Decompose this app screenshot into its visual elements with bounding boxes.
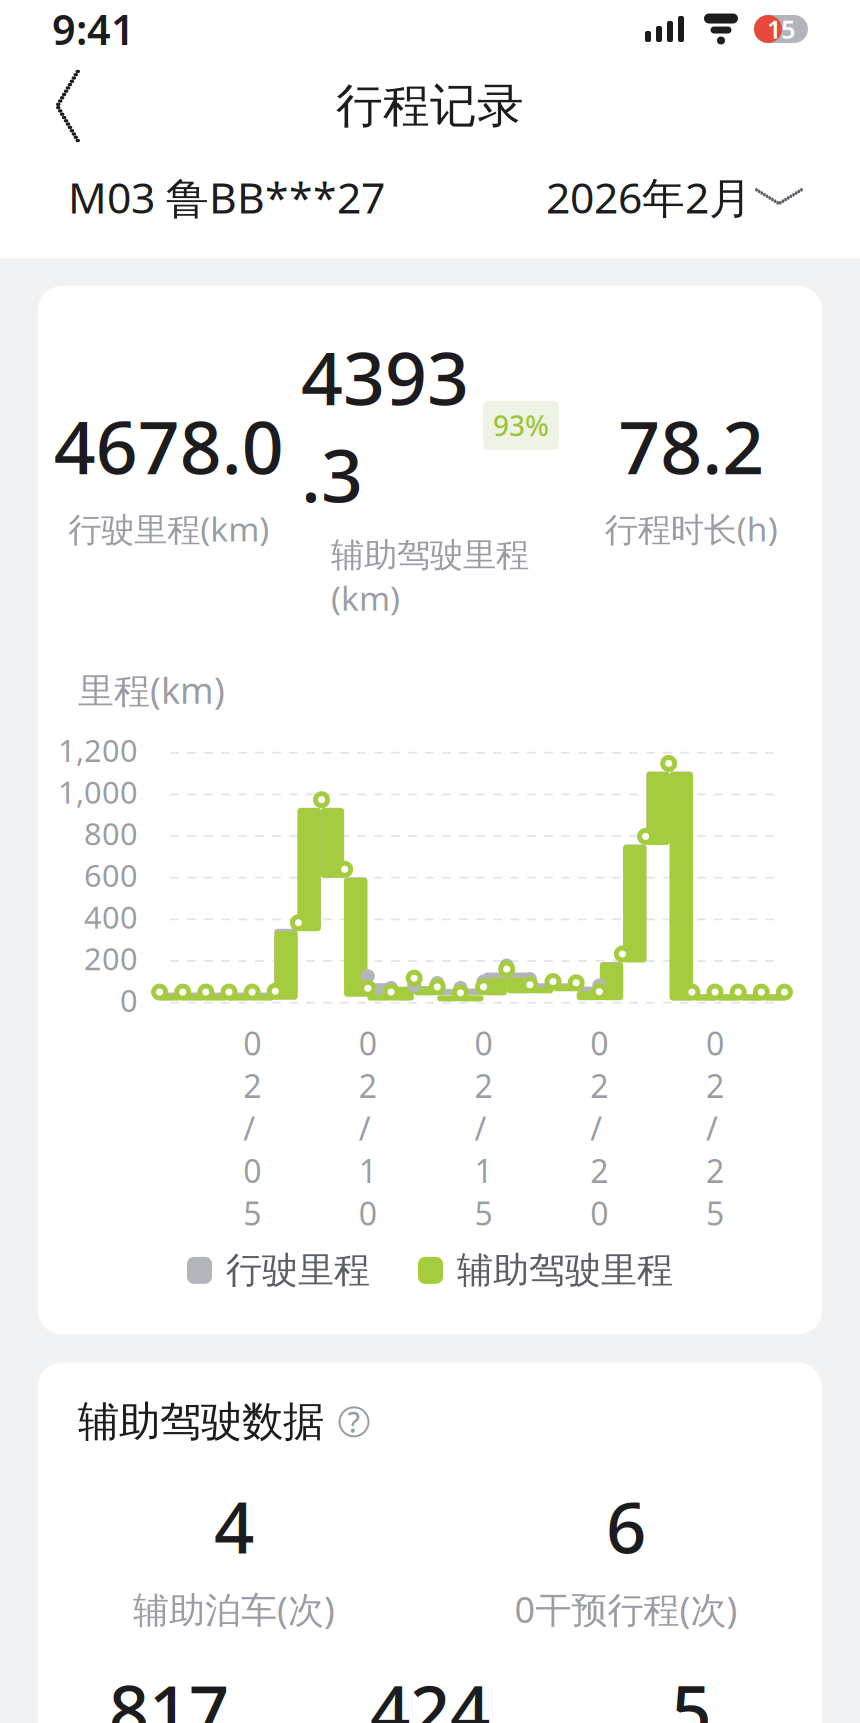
staticText: 1,000	[58, 771, 138, 812]
staticText: 800	[84, 813, 138, 854]
staticText: ?	[347, 1403, 360, 1440]
staticText: 4678.0	[54, 397, 284, 495]
staticText: 93%	[493, 407, 549, 444]
staticText: 4393.3	[301, 328, 469, 523]
staticText: 02/25	[706, 1022, 724, 1234]
staticText: 15	[767, 12, 795, 46]
staticText: 02/15	[475, 1022, 493, 1234]
staticText: 02/20	[590, 1022, 608, 1234]
button[interactable]: 2026年2月	[546, 157, 792, 237]
staticText: 行程记录	[336, 77, 524, 135]
button[interactable]: 辅助驾驶数据说明	[334, 1402, 374, 1442]
staticText: M03 鲁BB***27	[68, 169, 385, 225]
staticText: 0干预行程(次)	[514, 1585, 737, 1633]
staticText: 辅助泊车(次)	[133, 1585, 335, 1633]
staticText: 行驶里程(km)	[68, 506, 269, 551]
staticText: 02/10	[359, 1022, 377, 1234]
staticText: 0	[120, 980, 138, 1020]
staticText: 200	[84, 938, 138, 979]
staticText: 424	[370, 1663, 490, 1723]
staticText: 4	[214, 1479, 254, 1573]
staticText: 辅助驾驶里程	[457, 1248, 673, 1292]
staticText: 2026年2月	[546, 169, 752, 225]
staticText: 6	[606, 1479, 646, 1573]
staticText: 行驶里程	[226, 1248, 370, 1292]
staticText: 600	[84, 855, 138, 895]
staticText: 02/05	[243, 1022, 261, 1234]
button[interactable]: 返回	[30, 67, 106, 145]
staticText: 辅助驾驶里程(km)	[331, 535, 529, 620]
staticText: 里程(km)	[78, 666, 225, 714]
staticText: 400	[84, 896, 138, 937]
staticText: 1,200	[58, 730, 138, 770]
staticText: 辅助驾驶数据	[78, 1396, 324, 1447]
staticText: 78.2	[618, 397, 764, 495]
staticText: 5	[671, 1663, 711, 1723]
staticText: 行程时长(h)	[605, 506, 778, 551]
staticText: 817	[109, 1663, 229, 1723]
staticText: 9:41	[52, 2, 135, 56]
